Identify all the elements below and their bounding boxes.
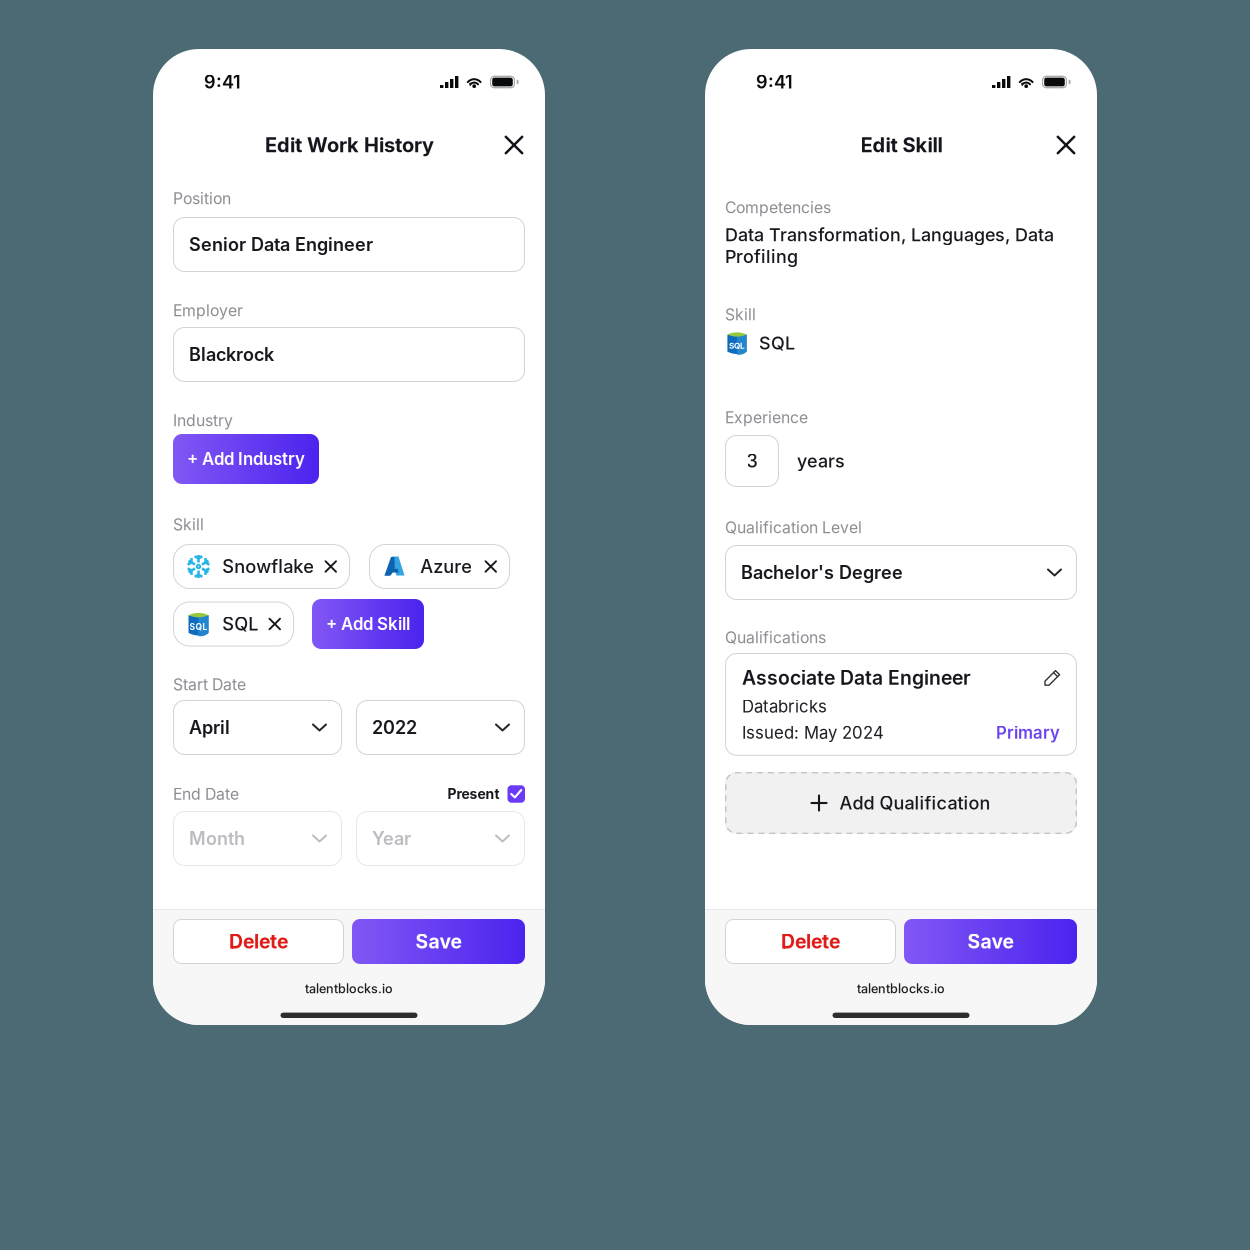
button[interactable]: 2022 [356,700,525,755]
button[interactable]: Save [904,919,1077,964]
staticText: years [797,450,845,472]
staticText: Present [447,786,499,802]
staticText: + Add Skill [326,614,410,634]
staticText: Experience [725,408,808,427]
staticText: Year [372,828,411,849]
button[interactable]: + Add Industry [173,434,319,484]
button[interactable]: Close [1045,124,1087,166]
staticText: Month [189,828,245,849]
staticText: Edit Skill [860,133,942,157]
staticText: Save [967,930,1013,953]
staticText: Issued: May 2024 [742,723,884,743]
staticText: Senior Data Engineer [189,234,373,255]
button[interactable]: Edit qualification [1045,670,1060,685]
staticText: April [189,717,230,738]
button[interactable]: Year [356,811,525,866]
staticText: Databricks [742,696,827,717]
button[interactable]: SQL [173,601,294,646]
staticText: talentblocks.io [857,981,945,996]
button[interactable]: + Add Skill [312,599,424,649]
staticText: Qualifications [725,628,826,647]
staticText: End Date [173,784,239,803]
staticText: 9:41 [756,71,793,93]
staticText: Add Qualification [839,792,990,814]
staticText: Employer [173,301,243,320]
staticText: Associate Data Engineer [742,666,971,689]
staticText: Competencies [725,198,831,217]
button[interactable]: Delete [725,919,896,964]
staticText: SQL [189,622,207,632]
staticText: 2022 [372,717,417,738]
staticText: Start Date [173,675,246,694]
button[interactable]: Azure [369,544,510,589]
button[interactable]: Save [352,919,525,964]
staticText: Industry [173,411,233,430]
staticText: talentblocks.io [305,981,393,996]
staticText: + Add Industry [187,449,305,469]
button[interactable]: April [173,700,342,755]
staticText: Edit Work History [265,133,434,157]
button[interactable]: Add Qualification [725,772,1077,834]
staticText: Bachelor's Degree [741,562,903,583]
staticText: Azure [420,555,472,577]
button[interactable]: Bachelor's Degree [725,545,1077,600]
staticText: Delete [781,930,840,953]
staticText: Delete [229,930,288,953]
button[interactable]: Month [173,811,342,866]
staticText: SQL [759,332,795,354]
button[interactable]: Close [493,124,535,166]
staticText: Data Transformation, Languages, Data Pro… [725,224,1054,267]
staticText: Position [173,189,231,208]
staticText: Save [415,930,461,953]
staticText: Skill [725,305,756,324]
staticText: 9:41 [204,71,241,93]
button[interactable]: Delete [173,919,344,964]
staticText: Skill [173,515,204,534]
button[interactable]: Present [447,785,525,803]
staticText: Snowflake [222,555,314,577]
staticText: Blackrock [189,344,274,365]
button[interactable]: Snowflake [173,544,350,589]
staticText: 3 [746,450,757,472]
staticText: Primary [996,723,1060,743]
staticText: SQL [729,341,745,351]
staticText: Qualification Level [725,518,862,537]
staticText: SQL [222,613,258,635]
